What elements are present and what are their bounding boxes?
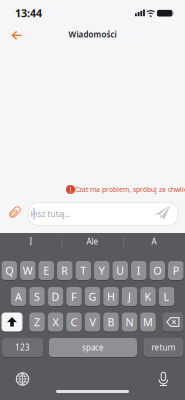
staticText: R [61,263,68,278]
button[interactable]: T [75,261,91,280]
button[interactable]: P [168,261,183,280]
staticText: A [15,289,22,304]
staticText: Czat ma problem, spróbuj za chwilę [75,185,185,194]
staticText: S [34,289,40,304]
button[interactable]: Q [1,261,17,280]
staticText: D [51,289,59,304]
button[interactable]: S [29,287,45,306]
button[interactable]: K [140,287,156,306]
button[interactable]: Y [94,261,109,280]
staticText: K [144,289,151,304]
staticText: 123 [15,342,30,353]
button[interactable]: D [48,287,63,306]
staticText: T [80,263,86,278]
staticText: E [43,263,49,278]
button[interactable] [153,204,173,222]
staticText: Z [34,315,40,329]
button[interactable]: G [85,287,100,306]
button[interactable]: L [159,287,174,306]
button[interactable]: C [66,312,82,331]
button[interactable]: F [66,287,82,306]
staticText: A [151,236,156,247]
staticText: U [116,263,124,278]
staticText: Ale [86,236,98,247]
button[interactable]: Pisz tutaj... [28,202,178,225]
button[interactable]: E [38,261,54,280]
button[interactable]: V [85,312,100,331]
button[interactable]: B [103,312,119,331]
staticText: Q [5,263,13,278]
button[interactable] [8,26,26,44]
button[interactable]: Z [29,312,45,331]
button[interactable]: A [124,233,184,250]
button[interactable]: O [149,261,165,280]
button[interactable]: space [49,338,137,357]
button[interactable]: A [11,287,26,306]
staticText: I [29,236,32,247]
staticText: X [52,315,58,329]
staticText: G [88,289,96,304]
staticText: O [153,263,161,278]
button[interactable]: J [122,287,137,306]
staticText: V [89,315,95,329]
staticText: P [173,263,179,278]
button[interactable]: H [103,287,119,306]
button[interactable]: W [20,261,35,280]
staticText: Y [99,263,105,278]
button[interactable]: N [122,312,137,331]
staticText: F [71,289,77,304]
button[interactable]: X [48,312,63,331]
button[interactable]: R [57,261,72,280]
button[interactable]: return [143,338,183,357]
staticText: space [82,342,104,353]
staticText: Pisz tutaj... [30,209,70,219]
button[interactable]: M [140,312,156,331]
staticText: H [107,289,115,304]
staticText: I [137,263,141,278]
button[interactable]: U [112,261,128,280]
button[interactable] [8,205,22,219]
staticText: N [125,315,133,329]
staticText: return [151,342,175,353]
staticText: B [107,315,114,329]
button[interactable] [157,371,170,386]
staticText: W [23,263,33,278]
button[interactable] [1,312,22,331]
button[interactable]: Ale [62,233,122,250]
staticText: J [128,289,131,304]
button[interactable] [16,372,29,385]
button[interactable] [162,312,183,331]
staticText: L [163,289,169,304]
button[interactable]: I [1,233,61,250]
button[interactable]: 123 [2,338,43,357]
staticText: Wiadomości [68,29,116,40]
staticText: C [70,315,77,329]
button[interactable]: I [131,261,146,280]
staticText: M [143,315,153,329]
staticText: 13:44 [15,6,42,20]
